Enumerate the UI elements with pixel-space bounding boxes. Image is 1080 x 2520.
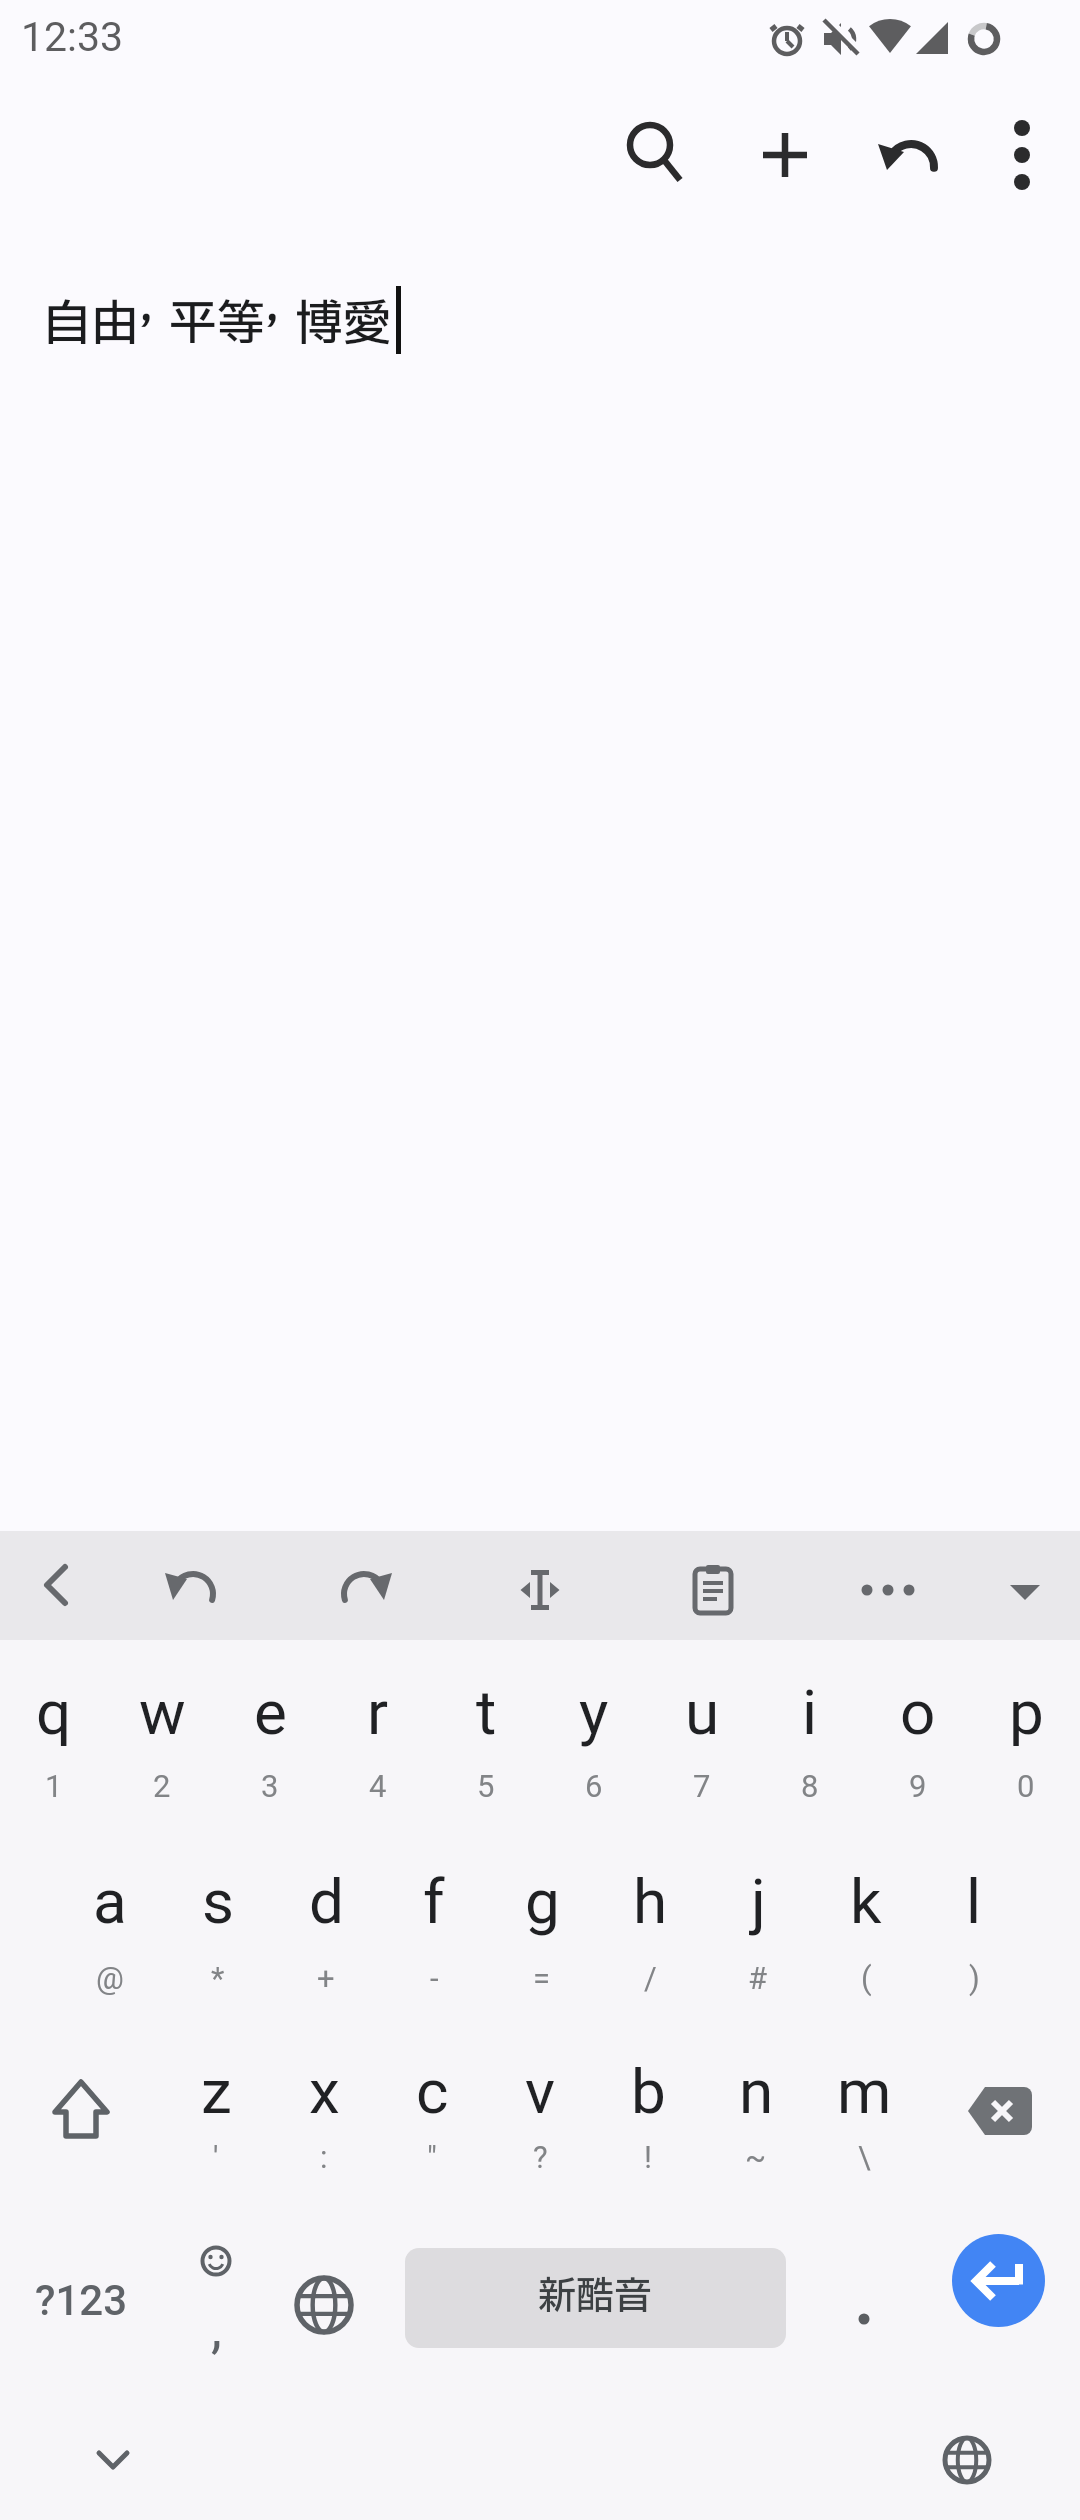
staticText: h <box>633 1865 668 1938</box>
button[interactable] <box>604 107 700 203</box>
staticText: v <box>525 2055 556 2128</box>
staticText: 8 <box>801 1768 819 1804</box>
staticText: 1 <box>45 1768 63 1804</box>
staticText: ( <box>861 1960 872 1996</box>
staticText: : <box>320 2139 328 2175</box>
button[interactable]: t <box>432 1640 540 1830</box>
staticText: x <box>309 2055 340 2128</box>
staticText: t <box>476 1676 497 1749</box>
button[interactable] <box>270 2210 378 2400</box>
button[interactable]: m <box>810 2020 918 2210</box>
staticText: c <box>416 2055 449 2128</box>
button[interactable] <box>152 1545 232 1625</box>
button[interactable]: y <box>540 1640 648 1830</box>
button[interactable] <box>810 2210 918 2400</box>
button[interactable]: u <box>648 1640 756 1830</box>
button[interactable]: a <box>56 1830 164 2020</box>
staticText: z <box>201 2055 232 2128</box>
staticText: 7 <box>693 1768 711 1804</box>
staticText: 0 <box>1017 1768 1035 1804</box>
staticText: ~ <box>745 2139 767 2175</box>
staticText: ?123 <box>35 2276 128 2325</box>
button[interactable]: 新酷音 <box>405 2248 786 2348</box>
staticText: * <box>211 1960 225 1996</box>
button[interactable]: k <box>812 1830 920 2020</box>
staticText: " <box>427 2139 437 2175</box>
staticText: @ <box>96 1960 124 1996</box>
staticText: d <box>309 1865 344 1938</box>
staticText: e <box>254 1676 287 1749</box>
staticText: ' <box>213 2139 219 2175</box>
button[interactable] <box>980 107 1064 203</box>
button[interactable]: r <box>324 1640 432 1830</box>
staticText: 2 <box>153 1768 171 1804</box>
staticText: 自由，平等，博愛 <box>43 269 392 361</box>
button[interactable] <box>917 2400 1017 2520</box>
staticText: s <box>202 1865 234 1938</box>
button[interactable] <box>500 1545 580 1625</box>
button[interactable] <box>985 1545 1065 1625</box>
button[interactable]: c <box>378 2020 486 2210</box>
staticText: w <box>139 1676 186 1749</box>
button[interactable] <box>952 2234 1045 2327</box>
staticText: 12:33 <box>21 13 124 61</box>
button[interactable]: w <box>108 1640 216 1830</box>
staticText: 5 <box>477 1768 495 1804</box>
button[interactable]: e <box>216 1640 324 1830</box>
button[interactable]: x <box>270 2020 378 2210</box>
staticText: , <box>211 2296 222 2360</box>
staticText: o <box>900 1676 936 1749</box>
button[interactable]: f <box>380 1830 488 2020</box>
button[interactable]: i <box>756 1640 864 1830</box>
button[interactable] <box>918 2020 1080 2210</box>
staticText: j <box>751 1865 766 1938</box>
button[interactable]: l <box>920 1830 1028 2020</box>
staticText: k <box>850 1865 882 1938</box>
staticText: u <box>685 1676 720 1749</box>
staticText: # <box>748 1960 768 1996</box>
button[interactable]: v <box>486 2020 594 2210</box>
staticText: + <box>317 1960 335 1996</box>
staticText: ? <box>533 2139 548 2175</box>
staticText: \ <box>858 2139 871 2175</box>
staticText: p <box>1009 1676 1044 1749</box>
button[interactable] <box>848 1545 928 1625</box>
button[interactable] <box>0 2020 162 2210</box>
button[interactable] <box>737 107 833 203</box>
staticText: r <box>367 1676 389 1749</box>
staticText: m <box>837 2055 892 2128</box>
button[interactable]: h <box>596 1830 704 2020</box>
button[interactable]: g <box>488 1830 596 2020</box>
button[interactable]: j <box>704 1830 812 2020</box>
button[interactable]: ?123 <box>0 2210 162 2400</box>
staticText: i <box>802 1676 818 1749</box>
staticText: 6 <box>585 1768 603 1804</box>
button[interactable]: p <box>972 1640 1080 1830</box>
staticText: b <box>631 2055 666 2128</box>
staticText: y <box>579 1676 609 1749</box>
button[interactable] <box>863 107 959 203</box>
button[interactable]: n <box>702 2020 810 2210</box>
button[interactable] <box>63 2400 163 2520</box>
button[interactable]: , <box>162 2210 270 2400</box>
staticText: f <box>423 1865 445 1938</box>
button[interactable] <box>15 1545 95 1625</box>
staticText: ! <box>644 2139 652 2175</box>
button[interactable] <box>673 1545 753 1625</box>
staticText: = <box>533 1960 551 1996</box>
staticText: n <box>739 2055 774 2128</box>
button[interactable]: b <box>594 2020 702 2210</box>
staticText: a <box>93 1865 127 1938</box>
button[interactable]: q <box>0 1640 108 1830</box>
staticText: / <box>644 1960 657 1996</box>
button[interactable]: s <box>164 1830 272 2020</box>
button[interactable]: o <box>864 1640 972 1830</box>
button[interactable]: z <box>162 2020 270 2210</box>
staticText: ) <box>969 1960 980 1996</box>
button[interactable]: d <box>272 1830 380 2020</box>
staticText: l <box>966 1865 982 1938</box>
staticText: q <box>36 1676 72 1749</box>
button[interactable] <box>325 1545 405 1625</box>
staticText: 9 <box>909 1768 927 1804</box>
staticText: - <box>430 1960 439 1996</box>
